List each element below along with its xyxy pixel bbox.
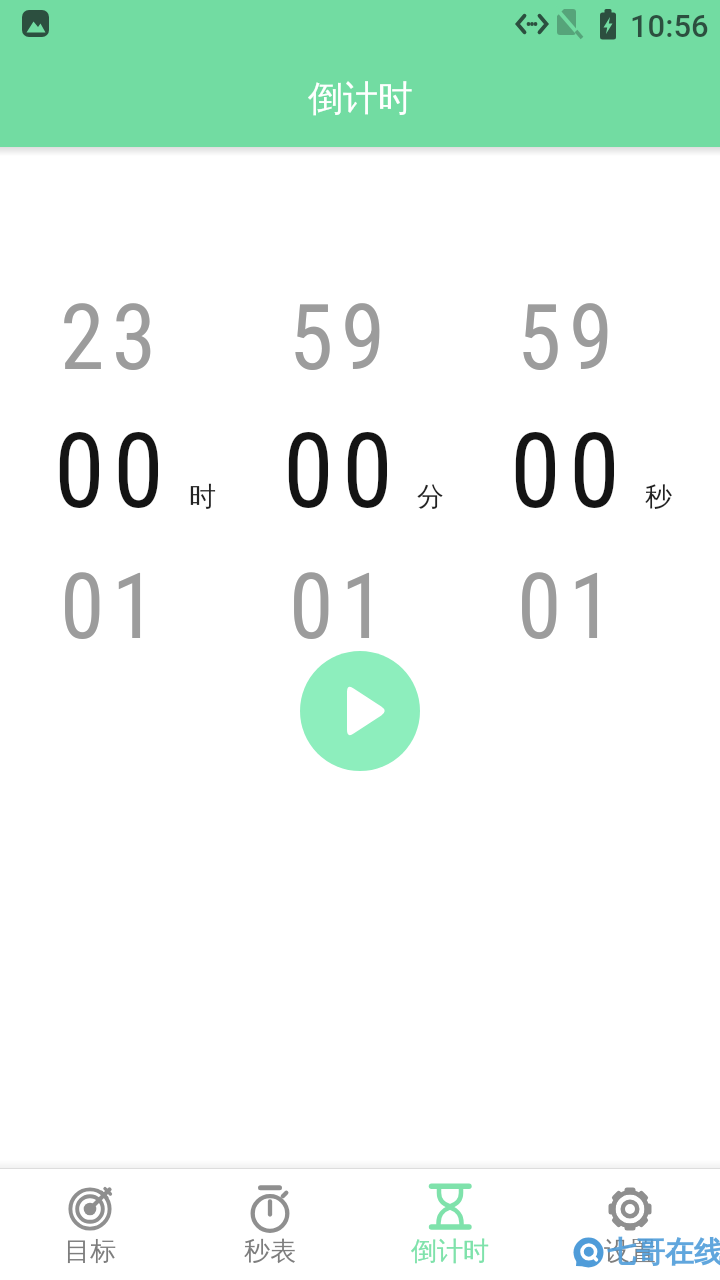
staticText: 00 [54,411,173,532]
staticText: 01 [289,555,393,660]
staticText: 01 [60,555,164,660]
staticText: 秒表 [244,1235,296,1268]
staticText: 分 [417,480,444,514]
staticText: 59 [289,286,393,391]
button[interactable]: 设置 [540,1169,720,1280]
button[interactable] [300,651,420,771]
staticText: 00 [510,411,629,532]
button[interactable] [260,300,460,645]
button[interactable] [488,300,688,645]
staticText: 设置 [604,1235,656,1268]
staticText: 倒计时 [411,1235,489,1268]
button[interactable]: 秒表 [180,1169,360,1280]
staticText: 倒计时 [308,76,413,120]
button[interactable]: 倒计时 [360,1169,540,1280]
staticText: 秒 [645,480,672,514]
staticText: 23 [60,286,164,391]
button[interactable] [30,300,230,645]
staticText: 01 [517,555,621,660]
staticText: 59 [517,286,621,391]
staticText: 七哥在线 [607,1234,720,1271]
staticText: 10:56 [630,8,709,44]
staticText: 00 [283,411,402,532]
staticText: 目标 [64,1235,116,1268]
button[interactable]: 目标 [0,1169,180,1280]
staticText: 时 [189,480,216,514]
